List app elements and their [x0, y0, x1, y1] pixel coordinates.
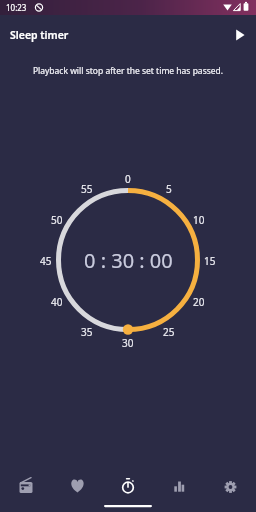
staticText: 15 — [204, 254, 216, 267]
staticText: 45 — [40, 254, 52, 267]
button[interactable] — [154, 464, 205, 512]
staticText: 25 — [163, 325, 175, 338]
staticText: Playback will stop after the set time ha… — [0, 65, 256, 77]
staticText: Sleep timer — [10, 28, 69, 42]
staticText: 20 — [193, 295, 205, 308]
button[interactable] — [103, 464, 154, 512]
button[interactable] — [226, 21, 254, 49]
staticText: 30 — [122, 336, 134, 349]
staticText: 50 — [51, 213, 63, 226]
staticText: 10:23 — [6, 2, 27, 13]
staticText: 5 — [166, 182, 172, 195]
staticText: 10 — [193, 213, 205, 226]
button[interactable] — [0, 464, 52, 512]
button[interactable] — [205, 464, 256, 512]
button[interactable] — [52, 464, 103, 512]
staticText: 0 — [125, 172, 131, 185]
staticText: 40 — [51, 295, 63, 308]
staticText: 55 — [81, 182, 93, 195]
staticText: 35 — [81, 325, 93, 338]
staticText: 0 : 30 : 00 — [84, 247, 173, 274]
